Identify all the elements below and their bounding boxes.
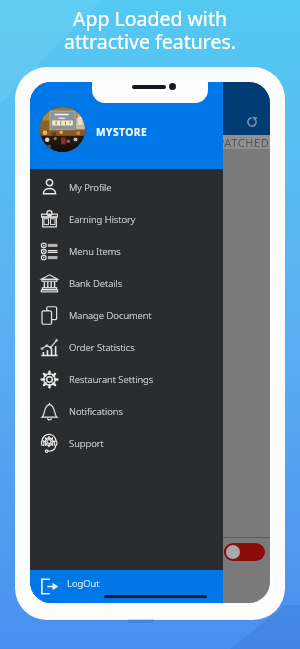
button[interactable]: Manage Document bbox=[30, 299, 223, 331]
staticText: Bank Details bbox=[69, 277, 123, 290]
button[interactable]: LogOut bbox=[30, 570, 223, 603]
staticText: Order Statistics bbox=[69, 341, 135, 354]
staticText: LogOut bbox=[67, 577, 100, 590]
button[interactable]: Availability toggle bbox=[224, 543, 265, 561]
staticText: MYSTORE bbox=[96, 125, 148, 139]
staticText: DISPATCHED bbox=[198, 135, 270, 149]
button[interactable]: Earning History bbox=[30, 203, 223, 235]
staticText: Menu Items bbox=[69, 245, 121, 258]
staticText: Support bbox=[69, 437, 104, 450]
button[interactable]: Support bbox=[30, 427, 223, 459]
staticText: Restaurant Settings bbox=[69, 373, 154, 386]
staticText: Manage Document bbox=[69, 309, 152, 322]
button[interactable]: Menu Items bbox=[30, 235, 223, 267]
button[interactable]: Restaurant Settings bbox=[30, 363, 223, 395]
button[interactable]: Bank Details bbox=[30, 267, 223, 299]
staticText: My Profile bbox=[69, 181, 112, 194]
staticText: App Loaded with attractive features. bbox=[64, 5, 236, 55]
button[interactable]: Refresh bbox=[246, 116, 258, 128]
button[interactable]: Order Statistics bbox=[30, 331, 223, 363]
staticText: Earning History bbox=[69, 213, 136, 226]
button[interactable]: Notifications bbox=[30, 395, 223, 427]
button[interactable]: My Profile bbox=[30, 171, 223, 203]
staticText: Notifications bbox=[69, 405, 123, 418]
